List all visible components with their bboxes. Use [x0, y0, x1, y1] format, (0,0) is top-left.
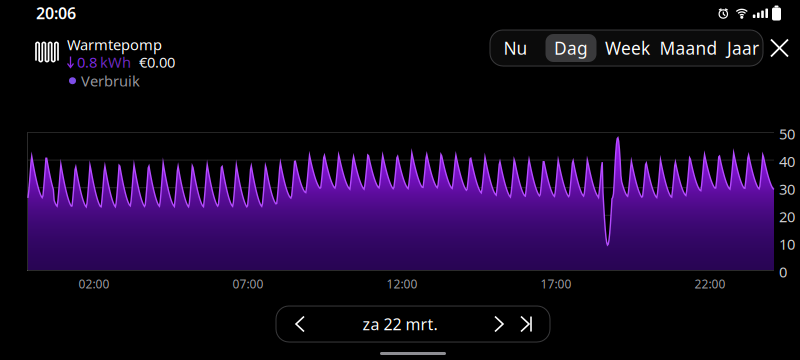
staticText: Jaar — [727, 36, 759, 59]
button[interactable]: Week — [599, 34, 655, 62]
staticText: €0.00 — [139, 52, 175, 72]
button[interactable]: Jaar — [721, 34, 764, 62]
button[interactable]: Maand — [658, 34, 718, 62]
staticText: 02:00 — [78, 276, 109, 292]
staticText: 40 — [779, 152, 795, 171]
staticText: 0.8 — [77, 52, 97, 72]
button[interactable]: Dag — [545, 34, 596, 62]
staticText: 20:06 — [36, 2, 76, 24]
staticText: 0 — [779, 262, 787, 281]
button[interactable]: Previous day — [276, 306, 318, 342]
staticText: 30 — [779, 179, 795, 199]
button[interactable]: Close — [771, 34, 799, 61]
staticText: 12:00 — [386, 276, 417, 292]
staticText: Nu — [503, 36, 527, 59]
staticText: 10 — [779, 234, 795, 254]
staticText: 17:00 — [540, 276, 571, 292]
button[interactable]: Next day — [482, 306, 516, 342]
button[interactable]: Nu — [488, 34, 542, 62]
staticText: 07:00 — [232, 276, 263, 292]
staticText: Verbruik — [81, 71, 140, 90]
staticText: Dag — [554, 36, 588, 59]
staticText: 50 — [779, 124, 795, 143]
staticText: Warmtepomp — [67, 35, 162, 54]
staticText: 20 — [779, 207, 795, 226]
staticText: za 22 mrt. — [362, 313, 437, 335]
button[interactable]: Latest — [516, 306, 550, 342]
staticText: kWh — [100, 52, 131, 72]
staticText: 22:00 — [694, 276, 725, 292]
staticText: Week — [605, 36, 650, 59]
staticText: Maand — [659, 36, 717, 59]
